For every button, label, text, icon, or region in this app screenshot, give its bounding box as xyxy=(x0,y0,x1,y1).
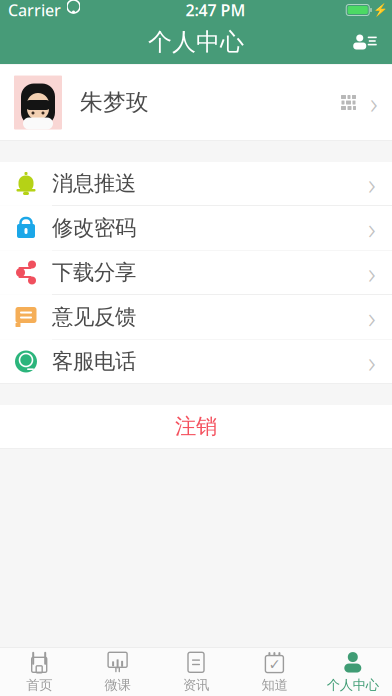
staticText: › xyxy=(368,208,376,247)
button[interactable]: 意见反馈 xyxy=(0,295,392,339)
staticText: › xyxy=(368,297,376,336)
staticText: 微课 xyxy=(105,677,131,693)
staticText: 资讯 xyxy=(183,677,209,693)
staticText: 客服电话 xyxy=(52,348,136,375)
staticText: 知道 xyxy=(261,677,287,693)
button[interactable]: ✓ xyxy=(235,648,314,696)
staticText: 首页 xyxy=(26,677,52,693)
staticText: 注销 xyxy=(175,413,217,440)
staticText: 2:47 PM xyxy=(185,0,245,21)
staticText: › xyxy=(368,342,376,381)
button[interactable]: 修改密码 xyxy=(0,206,392,250)
staticText: ✓ xyxy=(268,656,280,672)
staticText: 消息推送 xyxy=(52,170,136,197)
staticText: › xyxy=(368,253,376,292)
button[interactable]: 切换用户 xyxy=(348,25,382,59)
staticText: Carrier xyxy=(8,0,61,21)
button[interactable]: 微课 xyxy=(78,648,157,696)
button[interactable]: 个人中心 xyxy=(314,648,392,696)
staticText: › xyxy=(368,164,376,203)
staticText: 下载分享 xyxy=(52,259,136,286)
button[interactable]: 消息推送 xyxy=(0,161,392,205)
button[interactable]: 注销 xyxy=(0,404,392,448)
button[interactable]: 下载分享 xyxy=(0,250,392,294)
button[interactable]: 首页 xyxy=(0,648,78,696)
staticText: 意见反馈 xyxy=(52,304,136,330)
staticText: › xyxy=(370,83,378,122)
staticText: 个人中心 xyxy=(148,27,244,57)
button[interactable]: 客服电话 xyxy=(0,339,392,383)
staticText: 个人中心 xyxy=(327,677,379,693)
button[interactable]: 朱梦玫 xyxy=(0,64,392,140)
staticText: 朱梦玫 xyxy=(80,89,149,116)
button[interactable]: 资讯 xyxy=(157,648,235,696)
staticText: ⚡ xyxy=(373,3,388,17)
staticText: 修改密码 xyxy=(52,215,136,241)
